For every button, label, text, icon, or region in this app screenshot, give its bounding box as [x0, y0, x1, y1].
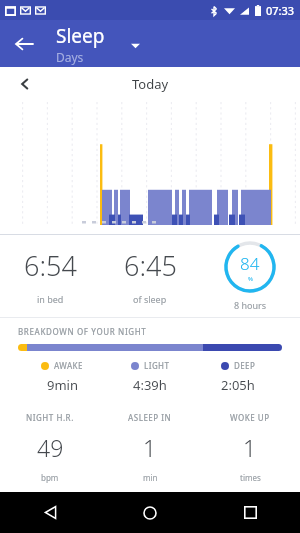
staticText: Sleep [56, 23, 105, 49]
button[interactable]: ASLEEP IN [100, 412, 200, 483]
button[interactable]: Home [100, 492, 200, 533]
button[interactable]: 6:54 [0, 247, 100, 305]
button[interactable]: Back [6, 26, 42, 62]
staticText: 6:54 [24, 247, 77, 284]
button[interactable]: DEEP [194, 360, 282, 394]
button[interactable]: Back [0, 492, 100, 533]
button[interactable]: 84 [200, 241, 300, 311]
staticText: BREAKDOWN OF YOUR NIGHT [18, 326, 147, 337]
button[interactable]: 6:45 [100, 247, 200, 305]
button[interactable]: Previous day [10, 69, 40, 99]
button[interactable]: NIGHT H.R. [0, 412, 100, 483]
button[interactable]: Change range [122, 32, 148, 58]
staticText: ASLEEP IN [128, 412, 172, 423]
staticText: 07:33 [266, 3, 295, 18]
staticText: WOKE UP [230, 412, 270, 423]
staticText: min [143, 472, 158, 483]
staticText: 1 [143, 432, 157, 463]
staticText: % [248, 275, 253, 283]
button[interactable]: WOKE UP [200, 412, 300, 483]
staticText: 6:45 [124, 247, 177, 284]
staticText: 2:05h [221, 376, 255, 394]
button[interactable]: Recents [200, 492, 300, 533]
staticText: DEEP [234, 360, 256, 371]
staticText: 4:39h [133, 376, 167, 394]
staticText: in bed [37, 293, 64, 305]
staticText: 8 hours [234, 299, 267, 311]
button[interactable]: AWAKE [18, 360, 106, 394]
staticText: times [240, 472, 261, 483]
staticText: of sleep [133, 293, 167, 305]
staticText: 1 [243, 432, 257, 463]
staticText: 49 [37, 432, 64, 463]
button[interactable]: LIGHT [106, 360, 194, 394]
staticText: 9min [47, 376, 78, 394]
staticText: bpm [41, 472, 59, 483]
staticText: AWAKE [54, 360, 83, 371]
staticText: LIGHT [144, 360, 170, 371]
staticText: 84 [240, 252, 260, 275]
staticText: Today [132, 75, 169, 93]
staticText: Days [56, 49, 84, 65]
staticText: NIGHT H.R. [26, 412, 74, 423]
